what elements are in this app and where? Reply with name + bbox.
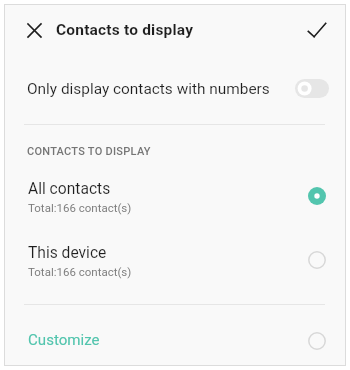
button[interactable]: Done: [296, 9, 338, 51]
staticText: CONTACTS TO DISPLAY: [27, 145, 151, 158]
staticText: All contacts: [28, 180, 111, 198]
button[interactable]: Close: [13, 9, 55, 51]
staticText: This device: [28, 244, 107, 262]
staticText: Customize: [28, 331, 100, 349]
staticText: Total:166 contact(s): [28, 265, 132, 278]
staticText: Contacts to display: [56, 21, 194, 39]
staticText: Only display contacts with numbers: [27, 80, 270, 98]
button[interactable]: Customize: [4, 318, 346, 362]
button[interactable]: This device: [4, 228, 346, 294]
button[interactable]: Only display contacts with numbers: [4, 61, 346, 117]
button[interactable]: All contacts: [4, 164, 346, 230]
staticText: Total:166 contact(s): [28, 201, 132, 214]
